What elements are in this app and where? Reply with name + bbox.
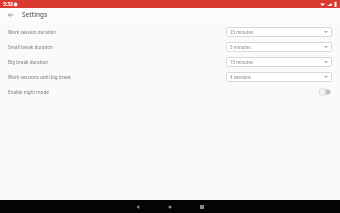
staticText: 3:32 [3, 1, 13, 8]
staticText: Work sessions until big break [8, 74, 226, 80]
button[interactable]: Back [126, 200, 150, 213]
button[interactable]: Enable night mode [0, 84, 340, 99]
button[interactable]: Home [158, 200, 182, 213]
button[interactable]: 15 minutes [226, 57, 332, 67]
button[interactable]: Big break duration [0, 54, 340, 69]
button[interactable]: Work session duration [0, 24, 340, 39]
button[interactable]: 4 sessions [226, 72, 332, 82]
staticText: 25 minutes [230, 29, 253, 35]
staticText: 5 minutes [230, 44, 251, 50]
button[interactable]: Enable night mode toggle [318, 87, 332, 97]
staticText: Small break duration [8, 44, 226, 50]
button[interactable]: Small break duration [0, 39, 340, 54]
staticText: Work session duration [8, 29, 226, 35]
button[interactable]: Recent apps [190, 200, 214, 213]
staticText: 15 minutes [230, 59, 253, 65]
staticText: 4 sessions [230, 74, 252, 80]
button[interactable]: Work sessions until big break [0, 69, 340, 84]
staticText: Big break duration [8, 59, 226, 65]
staticText: Enable night mode [8, 89, 318, 95]
button[interactable]: Back [6, 10, 16, 20]
staticText: Settings [22, 10, 48, 19]
button[interactable]: 5 minutes [226, 42, 332, 52]
button[interactable]: 25 minutes [226, 27, 332, 37]
